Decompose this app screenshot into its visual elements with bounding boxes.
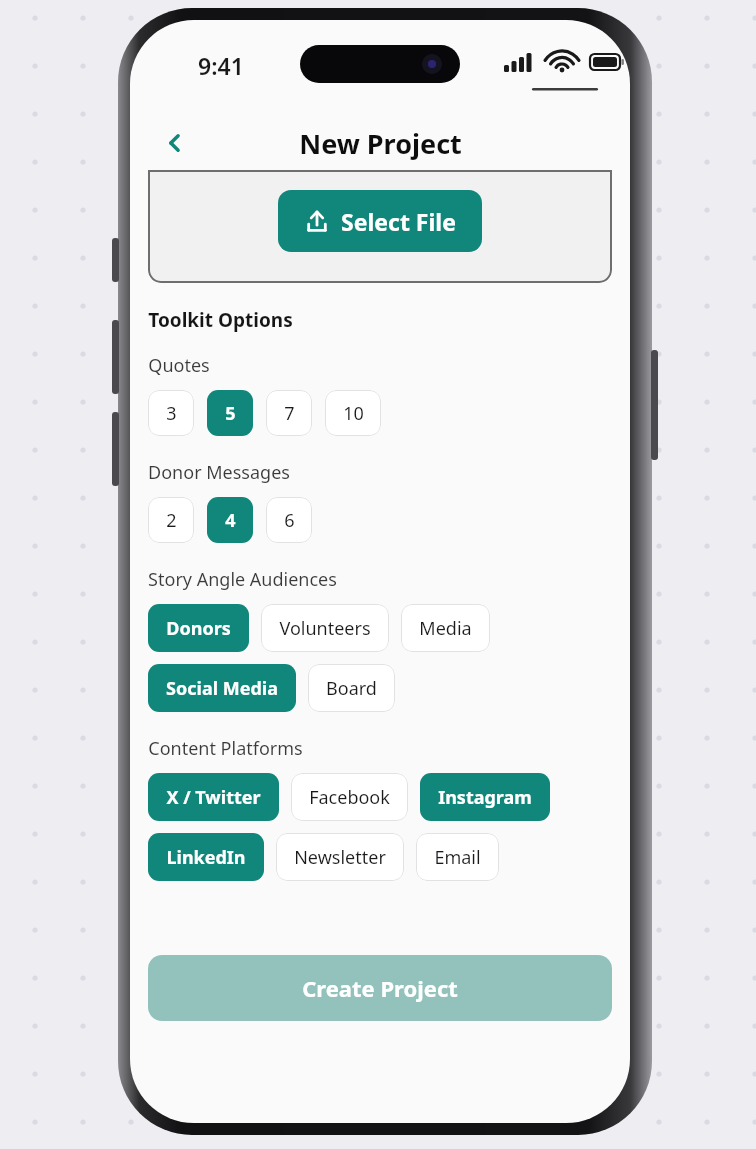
- button[interactable]: 10: [325, 390, 381, 436]
- button[interactable]: X / Twitter: [148, 773, 279, 821]
- staticText: Create Project: [302, 973, 458, 1003]
- staticText: Instagram: [438, 785, 532, 810]
- staticText: 9:41: [198, 50, 244, 81]
- staticText: Donor Messages: [148, 460, 290, 485]
- staticText: Toolkit Options: [148, 307, 293, 333]
- button[interactable]: Social Media: [148, 664, 296, 712]
- staticText: 10: [343, 401, 364, 426]
- button[interactable]: 7: [266, 390, 312, 436]
- staticText: LinkedIn: [166, 845, 246, 870]
- staticText: Quotes: [148, 353, 210, 378]
- staticText: 4: [225, 508, 236, 533]
- button[interactable]: Select File: [278, 190, 482, 252]
- staticText: 3: [166, 401, 177, 426]
- button[interactable]: Facebook: [291, 773, 408, 821]
- button[interactable]: Volunteers: [261, 604, 389, 652]
- button[interactable]: 2: [148, 497, 194, 543]
- button[interactable]: Email: [416, 833, 499, 881]
- staticText: X / Twitter: [166, 785, 261, 810]
- staticText: Facebook: [309, 785, 390, 810]
- staticText: Select File: [341, 206, 456, 237]
- button[interactable]: Donors: [148, 604, 249, 652]
- staticText: Board: [326, 676, 377, 701]
- staticText: New Project: [299, 125, 462, 162]
- staticText: 2: [166, 508, 177, 533]
- button[interactable]: 4: [207, 497, 253, 543]
- button[interactable]: 5: [207, 390, 253, 436]
- staticText: 7: [284, 401, 295, 426]
- button[interactable]: 3: [148, 390, 194, 436]
- staticText: Newsletter: [294, 845, 386, 870]
- button[interactable]: Back: [146, 116, 204, 170]
- button[interactable]: 6: [266, 497, 312, 543]
- staticText: Donors: [166, 616, 231, 641]
- staticText: Content Platforms: [148, 736, 303, 761]
- button[interactable]: Newsletter: [276, 833, 404, 881]
- staticText: Story Angle Audiences: [148, 567, 337, 592]
- staticText: Media: [419, 616, 472, 641]
- button[interactable]: Instagram: [420, 773, 550, 821]
- button[interactable]: Media: [401, 604, 490, 652]
- button[interactable]: Board: [308, 664, 395, 712]
- staticText: Social Media: [166, 676, 278, 701]
- button[interactable]: Create Project: [148, 955, 612, 1021]
- staticText: Email: [434, 845, 481, 870]
- button[interactable]: LinkedIn: [148, 833, 264, 881]
- staticText: 6: [284, 508, 295, 533]
- staticText: 5: [225, 401, 236, 426]
- staticText: Volunteers: [279, 616, 371, 641]
